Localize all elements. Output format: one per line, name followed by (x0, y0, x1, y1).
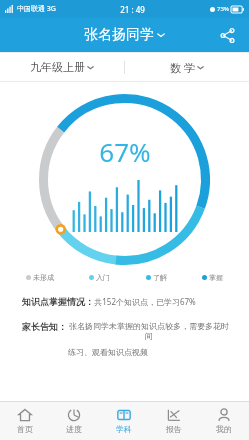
button[interactable]: 我的 (199, 402, 249, 440)
staticText: 张名扬同学 (84, 26, 154, 44)
staticText: 练习、观看知识点视频 (68, 347, 148, 357)
staticText: 九年级上册 (30, 60, 85, 74)
staticText: 首页 (17, 424, 33, 434)
button[interactable]: Share (215, 23, 239, 47)
staticText: 家长告知： (22, 321, 67, 332)
button[interactable]: 首页 (0, 402, 49, 440)
staticText: 入门 (96, 273, 110, 282)
button[interactable]: 学科 (99, 402, 149, 440)
staticText: 学科 (116, 424, 132, 434)
staticText: 67% (99, 134, 151, 169)
button[interactable]: 报告 (149, 402, 199, 440)
staticText: 知识点掌握情况： (22, 296, 94, 307)
staticText: 数 学 (170, 60, 195, 75)
staticText: 共152个知识点，已学习67% (94, 296, 196, 307)
button[interactable]: 数 学 (125, 53, 249, 81)
staticText: 了解 (153, 273, 167, 282)
staticText: 73% (217, 5, 229, 13)
button[interactable]: 张名扬同学 (84, 26, 165, 44)
staticText: 掌握 (209, 273, 223, 282)
button[interactable]: 九年级上册 (0, 53, 124, 81)
staticText: 未形成 (33, 273, 54, 282)
button[interactable]: 进度 (49, 402, 99, 440)
staticText: 我的 (216, 424, 232, 434)
staticText: 张名扬同学未掌握的知识点较多，需要多花时间 (67, 321, 231, 341)
staticText: 进度 (66, 424, 82, 434)
staticText: 中国联通 3G (17, 4, 56, 14)
staticText: 21 : 49 (120, 4, 145, 15)
staticText: 报告 (166, 424, 182, 434)
